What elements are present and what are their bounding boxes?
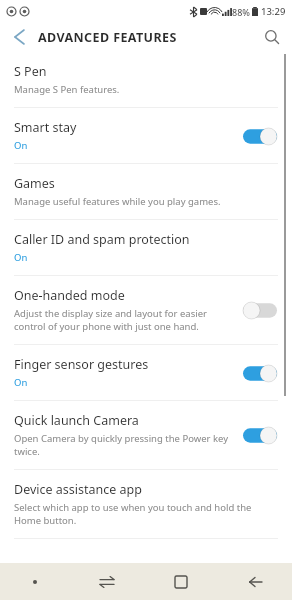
button[interactable]: Menu dot xyxy=(17,564,53,600)
staticText: One-handed mode xyxy=(14,287,125,304)
button[interactable]: One-handed mode off xyxy=(240,295,280,325)
button[interactable]: One-handed mode xyxy=(0,276,292,344)
staticText: On xyxy=(14,251,28,264)
button[interactable]: Games xyxy=(0,164,292,219)
staticText: Games xyxy=(14,175,55,192)
button[interactable]: Recents xyxy=(87,563,127,600)
button[interactable]: Device assistance app xyxy=(0,470,292,538)
staticText: On xyxy=(14,139,28,152)
staticText: Device assistance app xyxy=(14,481,142,498)
button[interactable]: Home xyxy=(161,563,201,600)
button[interactable]: Back xyxy=(235,563,275,600)
staticText: Manage S Pen features. xyxy=(14,83,120,96)
staticText: Finger sensor gestures xyxy=(14,356,149,373)
staticText: Caller ID and spam protection xyxy=(14,231,190,248)
button[interactable]: S Pen xyxy=(0,52,292,107)
staticText: 13:29 xyxy=(261,5,286,18)
button[interactable]: Caller ID and spam protection xyxy=(0,220,292,275)
staticText: Smart stay xyxy=(14,119,77,136)
staticText: Select which app to use when you touch a… xyxy=(14,501,280,527)
button[interactable]: Finger sensor gestures xyxy=(0,345,292,400)
staticText: S Pen xyxy=(14,63,47,80)
button[interactable]: Smart stay xyxy=(0,108,292,163)
button[interactable]: Back xyxy=(8,26,30,48)
button[interactable]: Quick launch Camera on xyxy=(240,420,280,450)
button[interactable]: Search xyxy=(260,25,284,49)
staticText: Open Camera by quickly pressing the Powe… xyxy=(14,432,232,458)
staticText: Manage useful features while you play ga… xyxy=(14,195,221,208)
staticText: ADVANCED FEATURES xyxy=(38,29,177,46)
staticText: 88% xyxy=(232,6,250,18)
button[interactable]: Finger sensor gestures on xyxy=(240,358,280,388)
button[interactable]: Quick launch Camera xyxy=(0,401,292,469)
button[interactable]: Smart stay on xyxy=(240,121,280,151)
staticText: Quick launch Camera xyxy=(14,412,139,429)
staticText: On xyxy=(14,376,28,389)
staticText: Adjust the display size and layout for e… xyxy=(14,307,232,333)
